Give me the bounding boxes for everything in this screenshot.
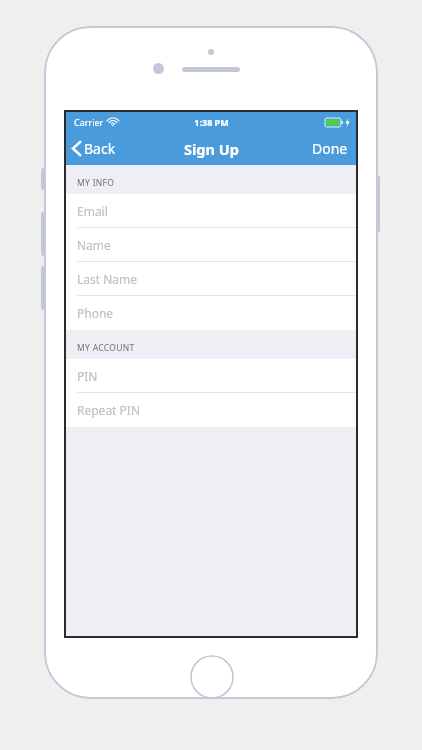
staticText: Sign Up (184, 139, 239, 159)
button[interactable]: Phone (66, 296, 356, 330)
button[interactable]: Last Name (66, 262, 356, 296)
staticText: Name (77, 237, 111, 253)
staticText: 1:38 PM (194, 116, 229, 128)
button[interactable]: Name (66, 228, 356, 262)
staticText: Repeat PIN (77, 402, 141, 418)
staticText: Done (312, 139, 348, 158)
button[interactable]: Repeat PIN (66, 393, 356, 427)
staticText: MY ACCOUNT (77, 342, 135, 354)
staticText: Last Name (77, 271, 138, 287)
staticText: Phone (77, 305, 114, 321)
button[interactable]: Email (66, 194, 356, 228)
staticText: Back (84, 139, 116, 158)
staticText: Carrier (74, 116, 104, 128)
staticText: Email (77, 203, 108, 219)
button[interactable]: PIN (66, 359, 356, 393)
staticText: PIN (77, 368, 98, 384)
staticText: MY INFO (77, 177, 115, 189)
button[interactable]: Back (66, 135, 126, 162)
button[interactable]: Done (302, 134, 356, 163)
